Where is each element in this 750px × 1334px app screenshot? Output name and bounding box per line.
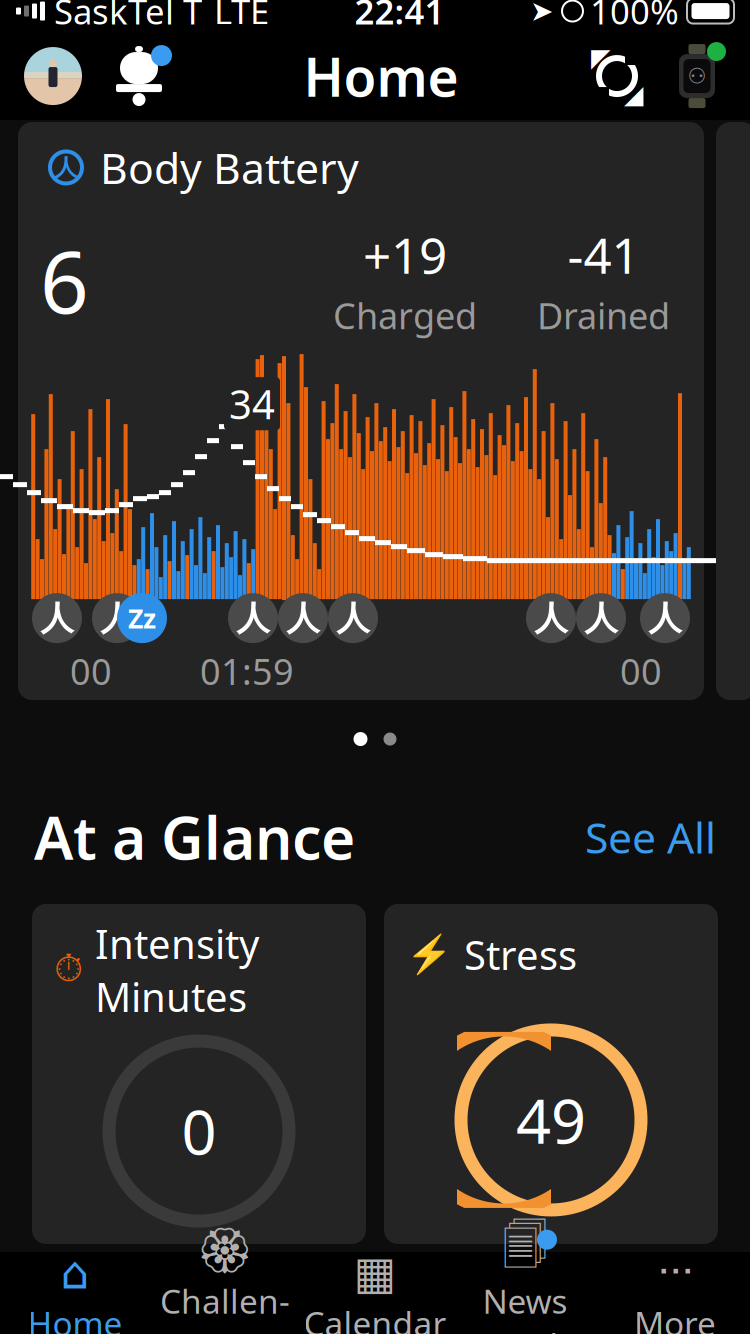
- staticText: Charged: [333, 291, 477, 339]
- staticText: +19: [363, 222, 447, 287]
- staticText: ◤: [591, 43, 610, 72]
- staticText: 人: [648, 598, 681, 639]
- button[interactable]: Notifications: [106, 45, 172, 107]
- staticText: ⏱: [54, 952, 83, 988]
- staticText: 人: [100, 598, 133, 639]
- staticText: At a Glance: [34, 798, 355, 876]
- staticText: ⌂: [60, 1247, 89, 1299]
- staticText: 人: [40, 598, 73, 639]
- staticText: 人: [336, 598, 369, 639]
- staticText: Calendar: [303, 1301, 446, 1334]
- staticText: ᐧᐧᐧ: [657, 1247, 693, 1299]
- staticText: See All: [585, 809, 716, 865]
- staticText: 34: [229, 377, 275, 430]
- button[interactable]: ▦: [300, 1252, 450, 1334]
- staticText: LTE: [214, 0, 269, 34]
- staticText: ◢: [624, 80, 643, 109]
- staticText: More: [634, 1301, 716, 1334]
- staticText: Intensity Minutes: [95, 917, 259, 1023]
- staticText: 人: [236, 598, 269, 639]
- button[interactable]: ⚡: [384, 904, 718, 1244]
- staticText: 🏵: [196, 1225, 254, 1277]
- staticText: 00: [620, 647, 662, 695]
- staticText: Body Battery: [100, 139, 359, 196]
- button[interactable]: ⌂: [0, 1252, 150, 1334]
- staticText: Drained: [537, 291, 670, 339]
- staticText: -41: [567, 222, 639, 287]
- button[interactable]: Sync: [590, 49, 644, 103]
- staticText: 22:41: [354, 0, 444, 34]
- staticText: Zz: [128, 600, 156, 636]
- button[interactable]: Profile: [24, 47, 82, 105]
- staticText: 人: [54, 154, 77, 181]
- button[interactable]: 🏵: [150, 1252, 300, 1334]
- staticText: 6: [40, 224, 89, 337]
- staticText: Home: [303, 41, 458, 111]
- staticText: 人: [534, 598, 567, 639]
- staticText: News Feed: [482, 1279, 567, 1334]
- staticText: ➤: [530, 0, 553, 27]
- staticText: 人: [584, 598, 617, 639]
- staticText: 人: [286, 598, 319, 639]
- staticText: ⚡: [406, 933, 452, 976]
- staticText: 01:59: [200, 647, 294, 695]
- staticText: 49: [516, 1079, 586, 1161]
- button[interactable]: ᐧᐧᐧ: [600, 1252, 750, 1334]
- staticText: ▦: [353, 1247, 396, 1299]
- staticText: ⚇: [687, 64, 706, 88]
- staticText: SaskTel T: [54, 0, 202, 34]
- staticText: Challenges: [160, 1279, 290, 1334]
- staticText: 0: [181, 1090, 216, 1172]
- staticText: Home: [27, 1301, 122, 1334]
- staticText: 100%: [590, 0, 679, 34]
- button[interactable]: ⏱: [32, 904, 366, 1244]
- staticText: 00: [70, 647, 112, 695]
- staticText: Stress: [464, 928, 577, 981]
- button[interactable]: 🗐: [450, 1252, 600, 1334]
- staticText: 🗐: [502, 1213, 547, 1288]
- button[interactable]: See All: [585, 809, 716, 865]
- button[interactable]: My Device: [668, 42, 726, 110]
